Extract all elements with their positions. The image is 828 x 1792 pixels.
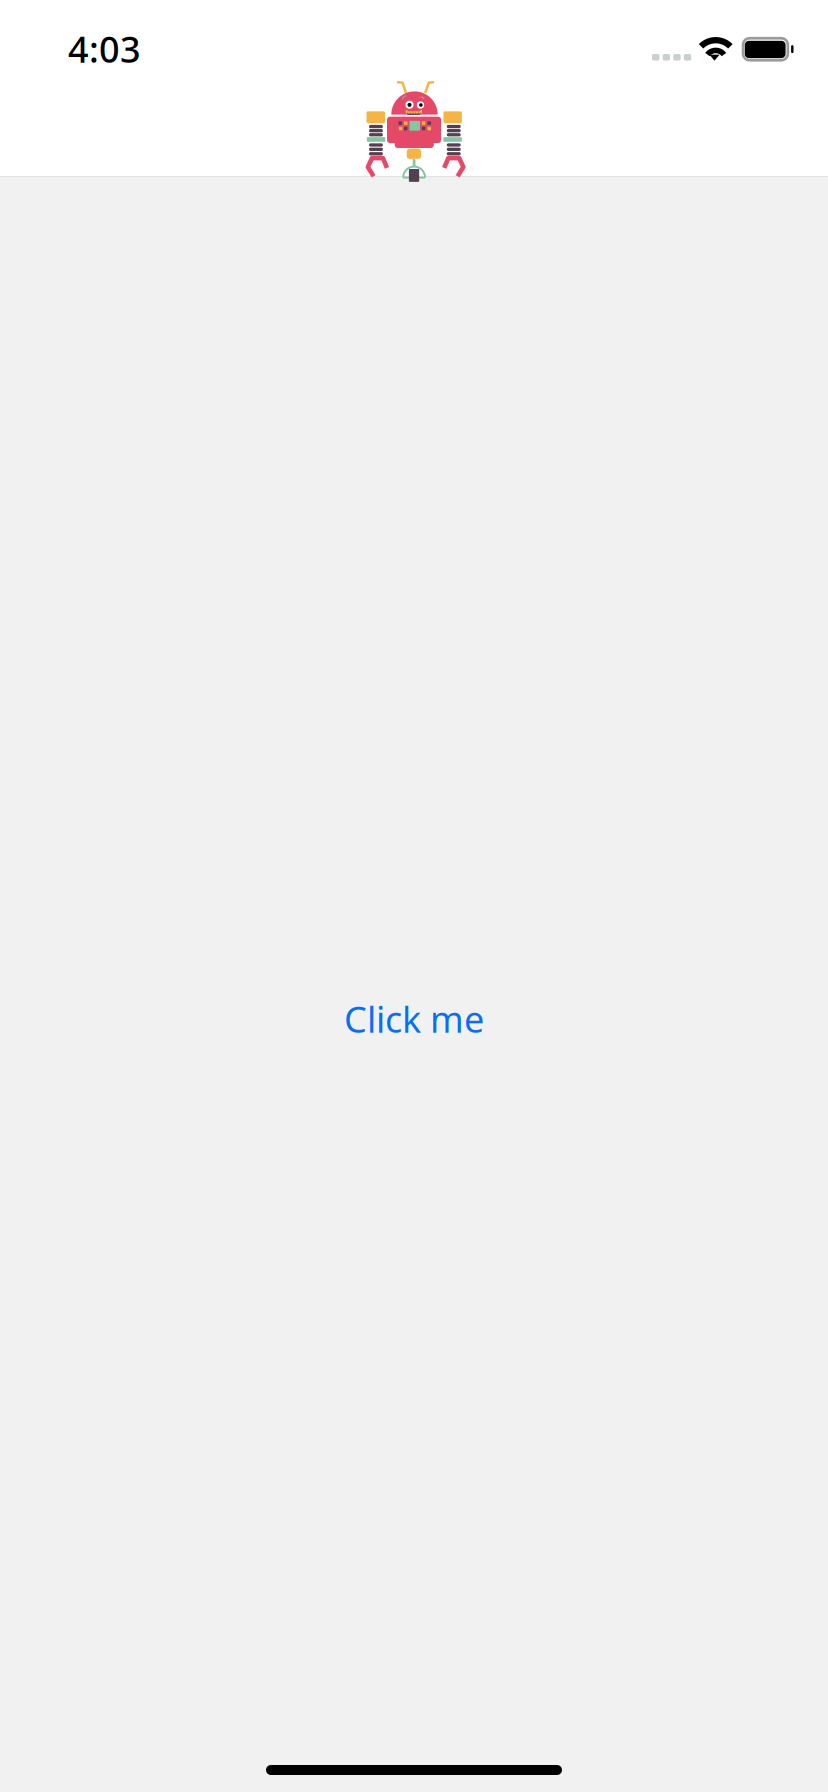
staticText: 4:03 xyxy=(68,25,141,73)
staticText: Click me xyxy=(344,995,484,1043)
button[interactable]: Click me xyxy=(344,995,484,1043)
